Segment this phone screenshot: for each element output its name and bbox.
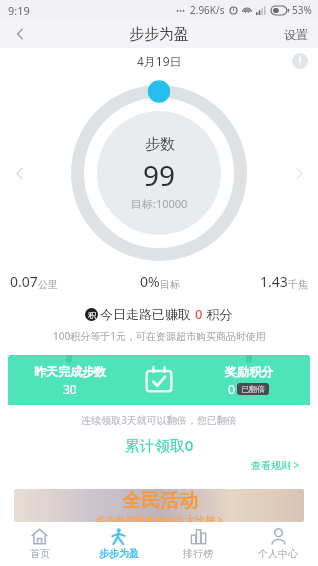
staticText: 首页: [30, 547, 50, 560]
staticText: 0: [195, 305, 203, 323]
staticText: 奖励积分: [225, 364, 273, 379]
button[interactable]: Previous day: [8, 162, 30, 184]
staticText: •••: [176, 5, 186, 16]
staticText: 步数: [145, 135, 175, 154]
staticText: 连续领取3天就可以翻倍，您已翻倍: [8, 413, 310, 427]
staticText: 1.43: [260, 272, 288, 291]
staticText: 2.96K/s: [190, 3, 225, 17]
staticText: 个人中心: [258, 547, 298, 560]
staticText: 排行榜: [183, 547, 213, 560]
staticText: 点击参加家庭健步走大比拼 >: [95, 513, 224, 522]
staticText: 53%: [292, 3, 312, 17]
staticText: 目标: [160, 278, 180, 291]
button[interactable]: 设置: [274, 20, 318, 48]
staticText: 9:19: [8, 3, 30, 18]
staticText: 步步为盈: [99, 547, 139, 560]
button[interactable]: 排行榜: [158, 522, 238, 566]
button[interactable]: 个人中心: [238, 522, 318, 566]
staticText: 0: [228, 381, 235, 397]
button[interactable]: 步步为盈: [79, 522, 158, 566]
staticText: 99: [143, 156, 176, 194]
button[interactable]: Next day: [288, 162, 310, 184]
staticText: 0%: [140, 272, 160, 291]
staticText: 积: [88, 310, 96, 320]
staticText: 公里: [38, 278, 58, 291]
staticText: 0.07: [10, 272, 38, 291]
staticText: 查看规则 >: [251, 458, 300, 472]
staticText: 30: [63, 381, 77, 397]
staticText: 千焦: [288, 278, 308, 291]
staticText: 目标:10000: [131, 196, 188, 211]
staticText: 昨天完成步数: [34, 364, 106, 379]
staticText: 4月19日: [137, 53, 182, 69]
staticText: 设置: [284, 27, 308, 42]
button[interactable]: 全民活动: [14, 489, 304, 522]
button[interactable]: 首页: [0, 522, 79, 566]
button[interactable]: Info: [292, 53, 308, 69]
staticText: 步步为盈: [129, 25, 189, 44]
button[interactable]: 查看规则 >: [241, 455, 310, 475]
staticText: 全民活动: [122, 489, 198, 513]
staticText: 累计领取0: [8, 435, 310, 455]
staticText: 已翻倍: [241, 384, 265, 394]
button[interactable]: Back: [0, 20, 40, 48]
staticText: 今日走路已赚取: [100, 305, 195, 323]
staticText: 100积分等于1元，可在资源超市购买商品时使用: [53, 329, 266, 343]
staticText: 积分: [203, 305, 233, 323]
